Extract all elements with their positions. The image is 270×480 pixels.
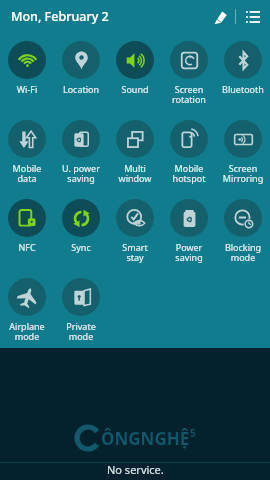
staticText: NFC — [0, 241, 54, 253]
staticText: Location — [54, 83, 108, 95]
staticText: Blocking mode — [216, 241, 270, 264]
staticText: Power saving — [162, 241, 216, 264]
staticText: Smart stay — [108, 241, 162, 264]
button[interactable]: Power saving — [162, 195, 216, 274]
button[interactable]: Blocking mode — [216, 195, 270, 274]
staticText: Sync — [54, 241, 108, 253]
staticText: Wi-Fi — [0, 83, 54, 95]
button[interactable]: Mobile data — [0, 116, 54, 195]
staticText: U. power saving — [54, 162, 108, 185]
button[interactable]: Screen Mirroring — [216, 116, 270, 195]
staticText: Airplane mode — [0, 320, 54, 343]
button[interactable]: Private mode — [54, 274, 108, 348]
staticText: Mobile data — [0, 162, 54, 185]
staticText: Private mode — [54, 320, 108, 343]
button[interactable]: NFC — [0, 195, 54, 274]
button[interactable]: Edit quick settings — [205, 2, 235, 32]
button[interactable]: Bluetooth — [216, 37, 270, 116]
staticText: Bluetooth — [216, 83, 270, 95]
staticText: Mon, February 2 — [11, 8, 109, 25]
button[interactable]: Sync — [54, 195, 108, 274]
button[interactable]: Multi window — [108, 116, 162, 195]
button[interactable]: Sound — [108, 37, 162, 116]
button[interactable]: Mobile hotspot — [162, 116, 216, 195]
button[interactable]: Screen rotation — [162, 37, 216, 116]
button[interactable]: Smart stay — [108, 195, 162, 274]
staticText: ÔNGNGHỆ — [101, 427, 190, 450]
button[interactable]: Airplane mode — [0, 274, 54, 348]
button[interactable]: Show notifications list — [236, 0, 270, 33]
button[interactable]: Location — [54, 37, 108, 116]
staticText: No service. — [107, 462, 164, 477]
staticText: Mobile hotspot — [162, 162, 216, 185]
staticText: Sound — [108, 83, 162, 95]
staticText: Screen Mirroring — [216, 162, 270, 185]
button[interactable]: U. power saving — [54, 116, 108, 195]
button[interactable]: Wi-Fi — [0, 37, 54, 116]
staticText: Screen rotation — [162, 83, 216, 106]
staticText: 5 — [190, 426, 196, 440]
staticText: Multi window — [108, 162, 162, 185]
